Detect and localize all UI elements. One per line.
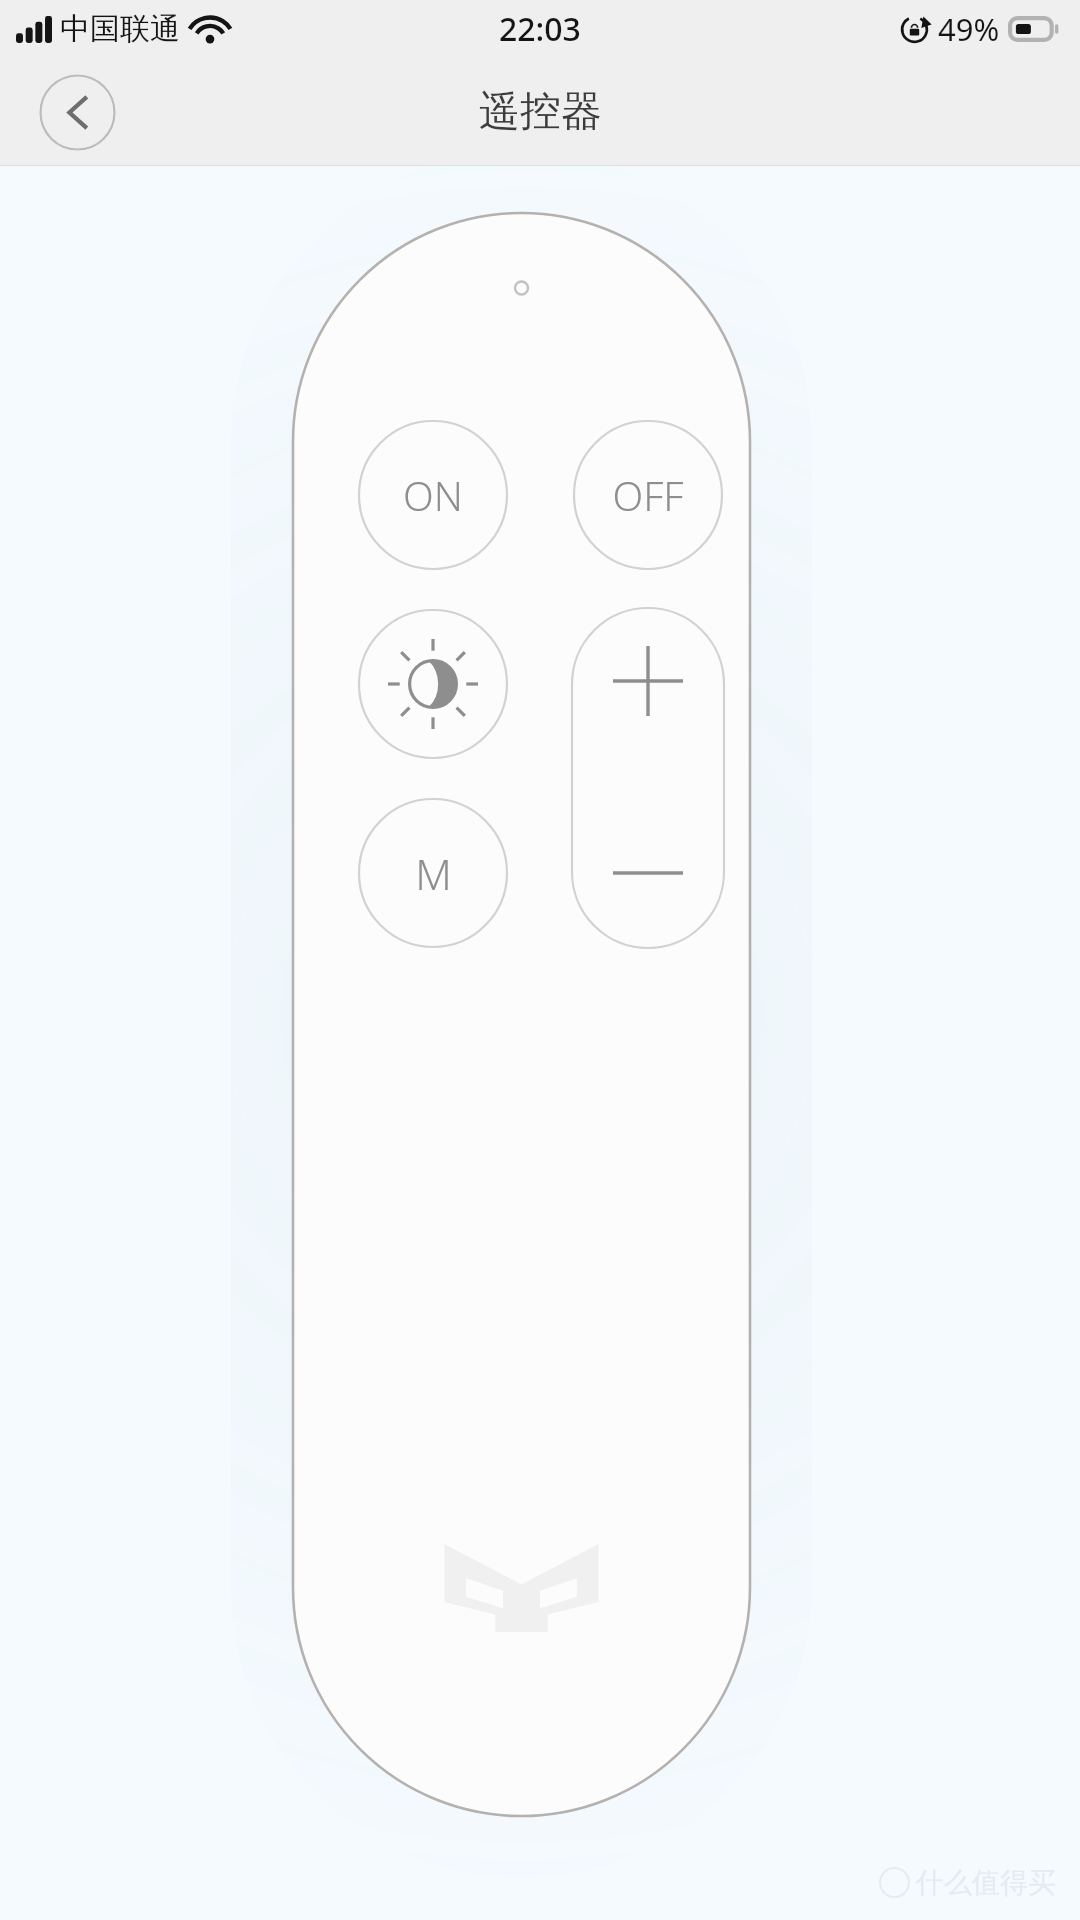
staticText: 中国联通 xyxy=(60,10,180,48)
staticText: OFF xyxy=(612,468,684,522)
button[interactable]: Brightness xyxy=(359,610,507,758)
button[interactable]: Increase brightness xyxy=(572,608,724,778)
button[interactable]: Back xyxy=(39,74,116,151)
staticText: 22:03 xyxy=(499,7,581,51)
staticText: M xyxy=(415,845,452,902)
other: Rotation lock xyxy=(899,14,930,45)
button[interactable]: Turn off xyxy=(574,421,722,569)
button[interactable]: Decrease brightness xyxy=(572,778,724,948)
staticText: 遥控器 xyxy=(479,86,602,138)
button[interactable]: Turn on xyxy=(359,421,507,569)
staticText: ON xyxy=(403,468,463,522)
staticText: 49% xyxy=(938,8,1000,50)
staticText: 什么值得买 xyxy=(916,1865,1056,1900)
button[interactable]: Mode xyxy=(359,799,507,947)
